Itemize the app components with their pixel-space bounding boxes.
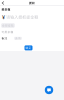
staticText: 请输入授权提金额 [6,15,38,20]
button[interactable]: Customer service [45,86,53,94]
staticText: 全部提取 [2,24,14,27]
staticText: 选填 [15,37,21,40]
staticText: 确定 [25,46,31,50]
button[interactable]: Back [0,0,6,6]
button[interactable]: 选填 [14,37,22,40]
staticText: ¥ [2,13,5,21]
staticText: 备注 [1,37,7,40]
button[interactable]: 确定 [24,45,32,50]
button[interactable]: 全部提取 [1,23,15,28]
staticText: 可用余额 [1,30,13,34]
staticText: 授权 [29,1,35,5]
staticText: 授权额 [1,8,10,11]
